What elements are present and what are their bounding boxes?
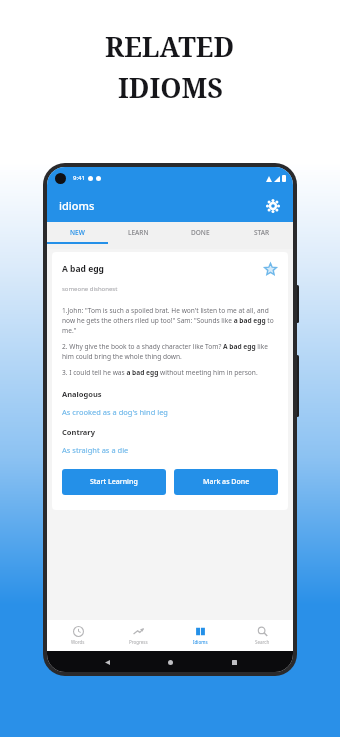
staticText: 3. I could tell he was a bad egg without… <box>62 368 258 377</box>
staticText: Search <box>255 639 270 645</box>
staticText: As crooked as a dog's hind leg <box>62 407 168 417</box>
button[interactable]: STAR <box>231 222 293 242</box>
staticText: 9:41 <box>73 174 85 182</box>
button[interactable]: Progress <box>108 620 169 651</box>
button[interactable]: LEARN <box>108 222 169 242</box>
button[interactable]: Recents <box>230 658 238 666</box>
staticText: DONE <box>191 228 210 237</box>
staticText: RELATED <box>105 28 235 65</box>
staticText: someone dishonest <box>62 285 118 293</box>
staticText: Words <box>71 639 85 645</box>
button[interactable]: Settings <box>263 196 283 216</box>
staticText: 1.John: "Tom is such a spoiled brat. He … <box>62 306 278 335</box>
button[interactable]: As straight as a die <box>62 445 278 455</box>
button[interactable]: Favorite <box>262 261 278 277</box>
staticText: STAR <box>254 228 270 237</box>
staticText: NEW <box>70 228 85 237</box>
button[interactable]: Home <box>166 658 174 666</box>
staticText: Contrary <box>62 427 95 437</box>
staticText: Start Learning <box>90 477 138 487</box>
button[interactable]: Mark as Done <box>174 469 278 495</box>
staticText: Progress <box>129 639 148 645</box>
staticText: 2. Why give the book to a shady characte… <box>62 342 278 361</box>
staticText: LEARN <box>128 228 149 237</box>
button[interactable]: Start Learning <box>62 469 166 495</box>
button[interactable]: Back <box>103 658 111 666</box>
staticText: As straight as a die <box>62 445 129 455</box>
button[interactable]: Idioms <box>169 620 231 651</box>
staticText: Idioms <box>193 639 208 645</box>
staticText: idioms <box>59 198 95 213</box>
button[interactable]: As crooked as a dog's hind leg <box>62 407 278 417</box>
staticText: IDIOMS <box>118 69 223 106</box>
staticText: Mark as Done <box>203 477 250 487</box>
staticText: A bad egg <box>62 263 262 275</box>
button[interactable]: Search <box>231 620 293 651</box>
button[interactable]: NEW <box>47 222 108 242</box>
button[interactable]: DONE <box>169 222 231 242</box>
button[interactable]: Words <box>47 620 108 651</box>
staticText: Analogous <box>62 389 102 399</box>
